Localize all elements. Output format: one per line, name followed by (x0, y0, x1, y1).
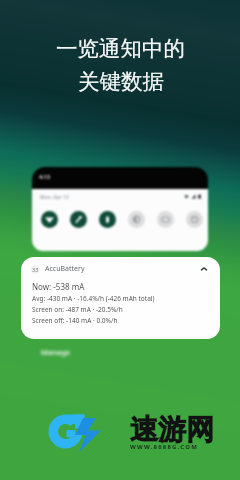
button[interactable]: Quick setting 5 (157, 211, 174, 228)
staticText: WWW.8688G.COM (130, 443, 198, 451)
button[interactable]: Quick setting 6 (186, 211, 203, 228)
staticText: Manage (41, 347, 71, 357)
staticText: AccuBattery (45, 264, 85, 274)
staticText: 33 (32, 266, 39, 273)
button[interactable]: Quick setting 3 (99, 211, 116, 228)
staticText: Screen on: -487 mA · -20.5%/h (32, 305, 123, 314)
staticText: Now: -538 mA (32, 281, 85, 292)
staticText: 一览通知中的 (56, 35, 185, 62)
button[interactable]: Quick setting 1 (41, 211, 58, 228)
button[interactable]: Collapse notification (199, 264, 209, 274)
staticText: 关键数据 (78, 68, 164, 95)
button[interactable]: Quick setting 2 (70, 211, 87, 228)
staticText: Mon, Apr 13 (40, 194, 69, 201)
staticText: 4:13 (39, 173, 50, 180)
staticText: 速游网 (130, 412, 214, 447)
staticText: Avg: -430 mA · -16.4%/h (-426 mAh total) (32, 294, 155, 303)
staticText: Screen off: -140 mA · 0.0%/h (32, 316, 118, 325)
button[interactable]: Quick setting 4 (128, 211, 145, 228)
